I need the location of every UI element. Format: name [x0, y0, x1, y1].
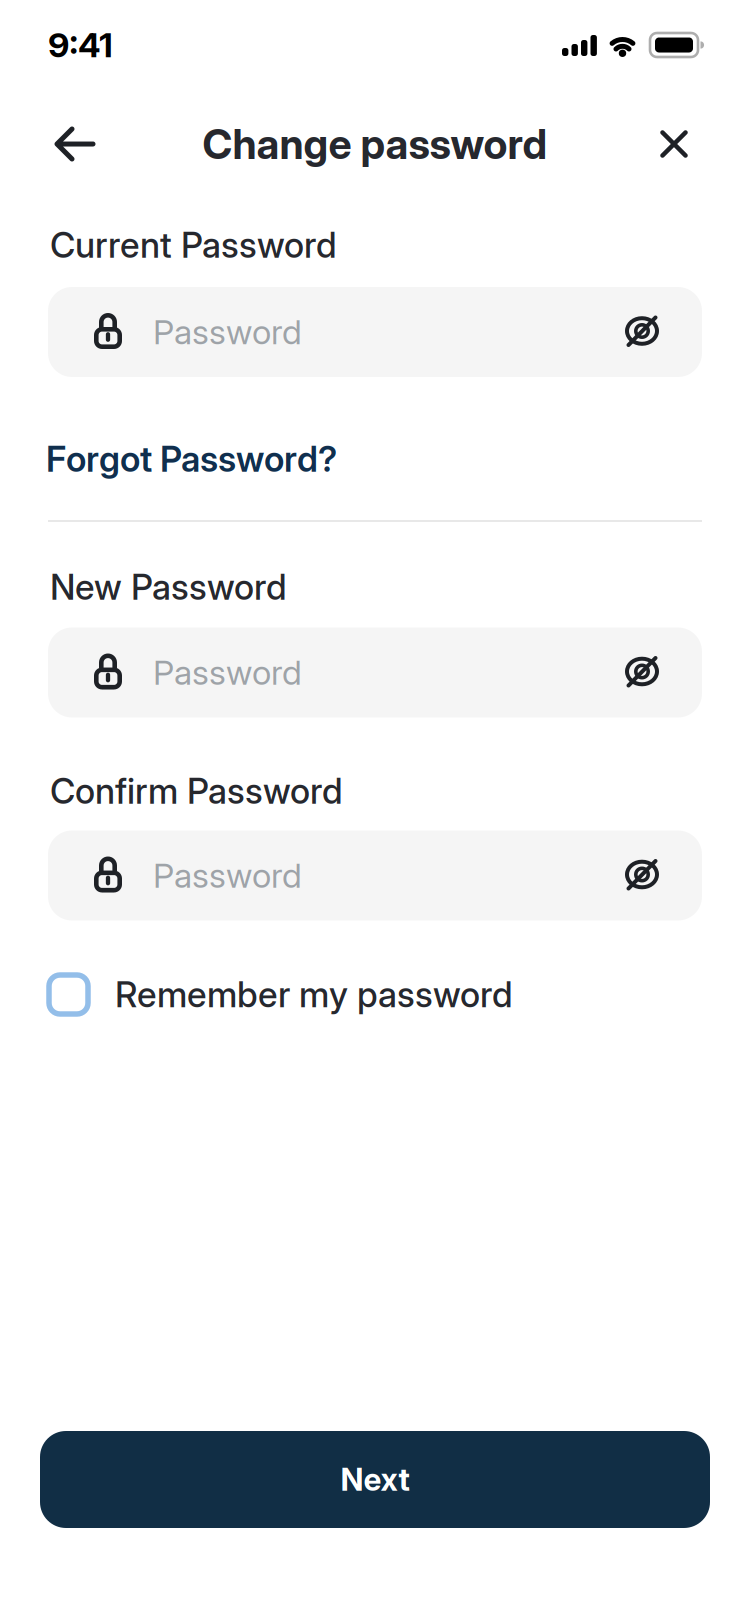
staticText: Forgot Password?: [46, 438, 337, 480]
staticText: Password: [153, 311, 302, 352]
staticText: Password: [153, 855, 302, 896]
staticText: Password: [153, 652, 302, 693]
button[interactable]: Show password: [625, 656, 659, 686]
staticText: Remember my password: [115, 973, 513, 1016]
button[interactable]: Show password: [625, 859, 659, 889]
button[interactable]: Close: [648, 118, 700, 170]
staticText: 9:41: [48, 24, 113, 65]
button[interactable]: Forgot Password?: [46, 435, 696, 483]
staticText: Confirm Password: [50, 770, 343, 812]
staticText: Change password: [202, 119, 547, 169]
staticText: New Password: [50, 566, 287, 608]
staticText: Next: [340, 1461, 409, 1498]
staticText: Current Password: [50, 224, 337, 266]
button[interactable]: Next: [40, 1431, 710, 1528]
button[interactable]: Remember my password: [49, 971, 701, 1017]
button[interactable]: Back: [47, 116, 103, 172]
button[interactable]: Show password: [625, 316, 659, 346]
